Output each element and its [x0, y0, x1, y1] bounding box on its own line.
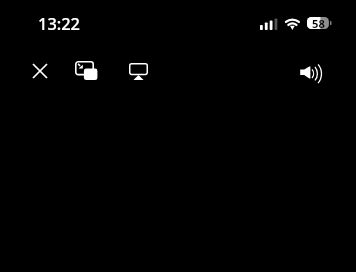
staticText: 13:22: [38, 12, 80, 34]
button[interactable]: Picture in picture: [66, 50, 106, 90]
button[interactable]: Close: [20, 51, 60, 91]
button[interactable]: Volume: [291, 53, 331, 93]
staticText: 58: [312, 16, 325, 28]
button[interactable]: Cast: [118, 51, 158, 91]
